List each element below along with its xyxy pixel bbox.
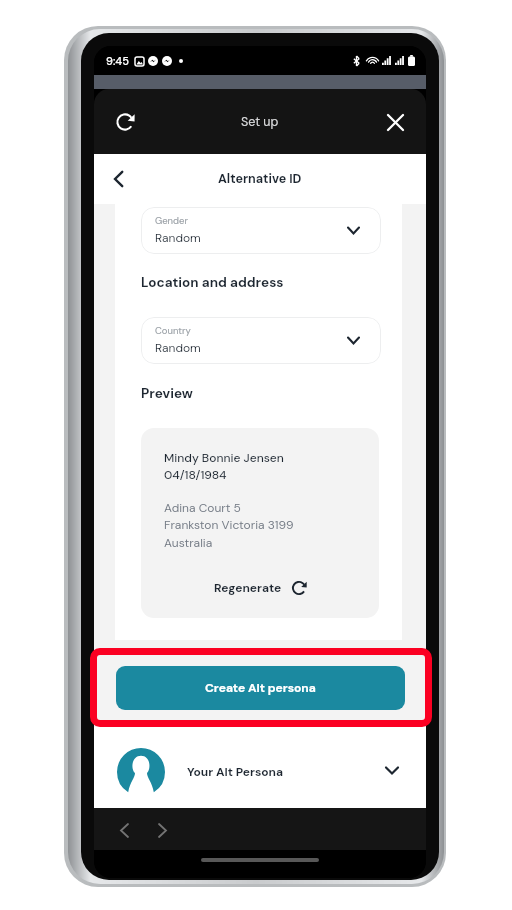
button[interactable]: Gender bbox=[141, 207, 381, 254]
staticText: Random bbox=[155, 230, 201, 246]
button[interactable]: Reload bbox=[110, 107, 140, 137]
button[interactable]: Forward bbox=[149, 817, 175, 843]
staticText: Regenerate bbox=[214, 580, 282, 596]
staticText: Location and address bbox=[141, 274, 284, 292]
button[interactable]: Create Alt persona bbox=[116, 666, 405, 710]
staticText: Random bbox=[155, 340, 201, 356]
staticText: Preview bbox=[141, 385, 193, 403]
staticText: Create Alt persona bbox=[205, 680, 316, 696]
button[interactable]: Close bbox=[380, 107, 410, 137]
staticText: Mindy Bonnie Jensen 04/18/1984 bbox=[164, 450, 284, 483]
staticText: 9:45 bbox=[106, 54, 129, 68]
staticText: Set up bbox=[241, 114, 279, 130]
staticText: Your Alt Persona bbox=[187, 764, 284, 780]
button[interactable]: Back bbox=[103, 163, 135, 195]
button[interactable]: Country bbox=[141, 317, 381, 364]
button[interactable]: Your Alt Persona bbox=[94, 727, 426, 808]
button[interactable]: Regenerate bbox=[214, 580, 307, 596]
staticText: Alternative ID bbox=[218, 171, 302, 187]
staticText: Gender bbox=[155, 215, 188, 227]
staticText: Country bbox=[155, 325, 191, 337]
staticText: Adina Court 5 Frankston Victoria 3199 Au… bbox=[164, 500, 294, 551]
button[interactable]: Back bbox=[111, 817, 137, 843]
